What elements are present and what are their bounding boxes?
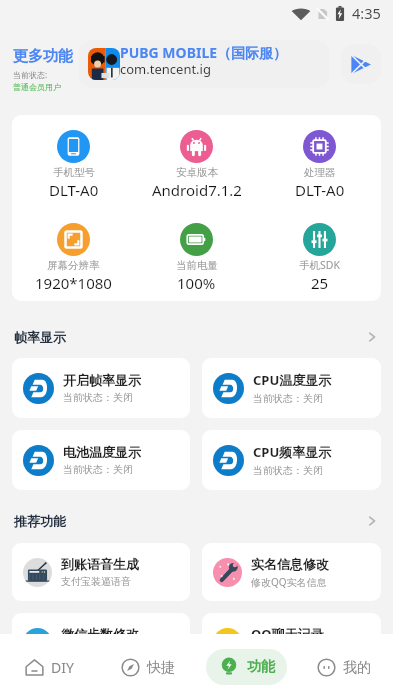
staticText: 当前状态：关闭: [253, 392, 323, 405]
staticText: 快捷: [147, 659, 175, 677]
button[interactable]: 启动: [341, 44, 381, 84]
staticText: com.tencent.ig: [120, 60, 211, 78]
button[interactable]: 快捷: [117, 652, 179, 683]
staticText: 实名信息修改: [251, 556, 329, 572]
staticText: CPU频率显示: [253, 443, 332, 461]
staticText: DLT-A0: [295, 180, 345, 199]
staticText: 处理器: [304, 166, 336, 179]
staticText: 支付宝装逼语音: [61, 575, 131, 588]
button[interactable]: 电池温度显示: [12, 430, 190, 490]
staticText: CPU温度显示: [253, 371, 332, 389]
button[interactable]: 手机型号: [12, 130, 135, 208]
staticText: 开启帧率显示: [63, 372, 141, 388]
button[interactable]: 处理器: [258, 130, 381, 208]
staticText: 100%: [177, 273, 216, 292]
staticText: Android7.1.2: [152, 180, 242, 199]
button[interactable]: 实名信息修改: [202, 543, 381, 601]
staticText: 4:35: [352, 3, 381, 23]
staticText: 当前电量: [176, 259, 218, 272]
staticText: 手机型号: [53, 166, 95, 179]
staticText: 当前状态:: [13, 69, 48, 80]
button[interactable]: 手机SDK: [258, 223, 381, 301]
staticText: 25: [311, 273, 329, 292]
staticText: DLT-A0: [49, 180, 99, 199]
button[interactable]: 安卓版本: [135, 130, 258, 208]
staticText: 当前状态：关闭: [63, 391, 133, 404]
button[interactable]: 帧率显示: [14, 327, 379, 347]
staticText: 当前状态：关闭: [63, 463, 133, 476]
staticText: 推荐功能: [14, 513, 66, 529]
button[interactable]: PUBG MOBILE（国际服）: [79, 40, 329, 88]
staticText: 安卓版本: [176, 166, 218, 179]
button[interactable]: 屏幕分辨率: [12, 223, 135, 301]
button[interactable]: DIY: [21, 652, 78, 683]
staticText: 我的: [343, 659, 371, 677]
staticText: 帧率显示: [14, 329, 66, 345]
staticText: DIY: [51, 658, 74, 677]
button[interactable]: 开启帧率显示: [12, 358, 190, 418]
button[interactable]: CPU温度显示: [202, 358, 381, 418]
button[interactable]: CPU频率显示: [202, 430, 381, 490]
button[interactable]: QQ聊天记录: [202, 613, 381, 671]
staticText: 1920*1080: [35, 273, 112, 292]
staticText: 电池温度显示: [63, 444, 141, 460]
staticText: 手机SDK: [299, 258, 340, 272]
staticText: 修改QQ实名信息: [251, 575, 327, 589]
button[interactable]: 功能: [206, 649, 287, 685]
button[interactable]: 推荐功能: [14, 511, 379, 531]
staticText: 功能: [247, 658, 275, 676]
staticText: QQ聊天记录: [251, 625, 324, 643]
staticText: 当前状态：关闭: [253, 464, 323, 477]
staticText: PUBG MOBILE（国际服）: [120, 43, 288, 62]
staticText: 更多功能: [13, 47, 73, 66]
button[interactable]: 微信步数修改: [12, 613, 190, 671]
staticText: 屏幕分辨率: [47, 259, 100, 272]
staticText: 微信步数修改: [61, 626, 139, 642]
staticText: 查看聊天记录: [251, 646, 311, 659]
button[interactable]: 当前电量: [135, 223, 258, 301]
button[interactable]: 到账语音生成: [12, 543, 190, 601]
staticText: 到账语音生成: [61, 556, 139, 572]
staticText: 普通会员用户: [13, 82, 61, 92]
button[interactable]: 我的: [313, 652, 375, 683]
